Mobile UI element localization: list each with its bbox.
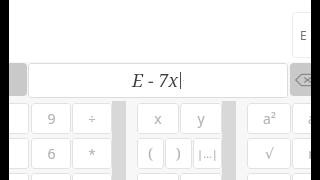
button[interactable]: * <box>72 138 112 169</box>
button[interactable]: x <box>137 103 179 134</box>
staticText: ÷ <box>88 110 96 128</box>
staticText: a² <box>263 109 276 128</box>
staticText: * <box>88 145 96 163</box>
button[interactable]: 9 <box>31 103 71 134</box>
staticText: · <box>181 76 185 86</box>
staticText: a <box>308 109 316 128</box>
button[interactable] <box>72 173 112 180</box>
staticText: ) <box>176 144 181 163</box>
button[interactable]: n <box>292 138 320 169</box>
staticText: ( <box>148 144 153 163</box>
button[interactable] <box>180 173 222 180</box>
button[interactable] <box>0 103 29 134</box>
button[interactable]: √ <box>247 138 291 169</box>
button[interactable] <box>247 173 291 180</box>
button[interactable] <box>31 173 71 180</box>
button[interactable]: |…| <box>193 138 222 169</box>
button[interactable] <box>137 173 179 180</box>
button[interactable]: E <box>292 12 320 58</box>
button[interactable]: a² <box>247 103 291 134</box>
button[interactable]: ) <box>165 138 192 169</box>
staticText: 9 <box>47 109 56 128</box>
button[interactable]: Keyboard switch <box>3 63 27 96</box>
staticText: x <box>154 109 162 128</box>
button[interactable] <box>0 173 29 180</box>
button[interactable]: Backspace <box>290 63 320 96</box>
staticText: 6 <box>47 144 56 163</box>
button[interactable]: E − 7x <box>28 63 288 98</box>
staticText: E − 7x <box>132 68 179 93</box>
staticText: √ <box>265 146 274 162</box>
button[interactable]: a <box>292 103 320 134</box>
button[interactable]: y <box>180 103 222 134</box>
staticText: y <box>197 109 205 128</box>
staticText: E <box>300 27 307 43</box>
button[interactable] <box>292 173 320 180</box>
button[interactable]: 6 <box>31 138 71 169</box>
button[interactable]: ( <box>137 138 164 169</box>
staticText: n <box>308 144 317 163</box>
staticText: |…| <box>197 146 218 161</box>
button[interactable] <box>0 138 29 169</box>
button[interactable]: ÷ <box>72 103 112 134</box>
